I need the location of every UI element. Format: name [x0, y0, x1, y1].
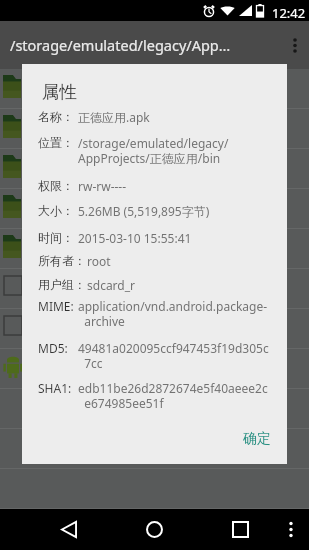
button[interactable]: [0, 429, 309, 469]
button[interactable]: Menu: [272, 509, 309, 550]
staticText: 2015-03-10 15:55:41: [78, 230, 192, 246]
staticText: edb11be26d2872674e5f40aeee2c e674985ee51…: [78, 380, 268, 411]
staticText: MIME:: [38, 298, 74, 314]
staticText: 属性: [42, 81, 77, 103]
button[interactable]: [0, 229, 309, 269]
button[interactable]: [0, 69, 309, 109]
button[interactable]: [0, 149, 309, 189]
staticText: 时间：: [38, 230, 74, 245]
button[interactable]: More options: [281, 21, 309, 69]
staticText: 权限：: [38, 178, 74, 193]
staticText: 5.26MB (5,519,895字节): [78, 203, 210, 219]
staticText: 大小：: [38, 203, 74, 218]
staticText: application/vnd.android.package- archive: [78, 298, 268, 329]
button[interactable]: [0, 509, 309, 549]
staticText: 49481a020095ccf947453f19d305c 7cc: [78, 340, 269, 371]
staticText: 用户组：: [38, 277, 86, 292]
staticText: /storage/emulated/legacy/ AppProjects/正德…: [78, 135, 229, 166]
staticText: sdcard_r: [87, 277, 136, 293]
button[interactable]: [0, 309, 309, 349]
staticText: 所有者：: [38, 253, 86, 268]
staticText: 确定: [243, 430, 271, 448]
staticText: 名称：: [38, 109, 74, 124]
staticText: root: [87, 253, 111, 269]
staticText: MD5:: [38, 340, 68, 356]
button[interactable]: Home: [125, 509, 183, 550]
staticText: rw-rw----: [78, 178, 127, 194]
staticText: SHA1:: [38, 380, 72, 396]
button[interactable]: 确定: [231, 422, 283, 456]
button[interactable]: [0, 109, 309, 149]
staticText: 正德应用.apk: [78, 109, 150, 125]
button[interactable]: [0, 189, 309, 229]
button[interactable]: Back: [40, 509, 98, 550]
staticText: 位置：: [38, 135, 74, 150]
button[interactable]: [0, 269, 309, 309]
button[interactable]: [0, 389, 309, 429]
button[interactable]: Recent apps: [211, 509, 269, 550]
button[interactable]: [0, 349, 309, 389]
staticText: /storage/emulated/legacy/App…: [10, 35, 281, 55]
staticText: 12:42: [272, 4, 306, 22]
